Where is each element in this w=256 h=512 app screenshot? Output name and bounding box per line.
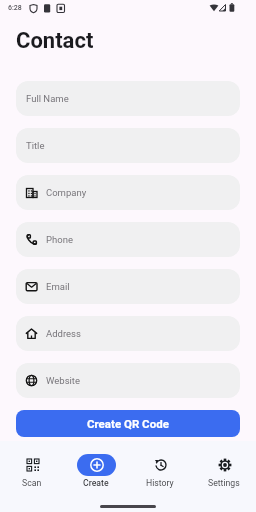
staticText: Settings xyxy=(208,478,240,488)
staticText: History xyxy=(146,478,174,488)
button[interactable]: Title xyxy=(16,128,240,163)
button[interactable]: Create xyxy=(64,454,128,500)
staticText: Website xyxy=(46,375,81,386)
button[interactable]: Address xyxy=(16,316,240,351)
staticText: Create QR Code xyxy=(87,417,169,430)
staticText: Full Name xyxy=(26,93,69,104)
staticText: Title xyxy=(26,140,45,151)
staticText: Scan xyxy=(22,478,42,488)
staticText: Address xyxy=(46,328,81,339)
button[interactable]: Settings xyxy=(192,454,256,500)
staticText: 6:28 xyxy=(8,4,22,12)
button[interactable]: Scan xyxy=(0,454,64,500)
button[interactable]: Email xyxy=(16,269,240,304)
staticText: Email xyxy=(46,281,70,292)
button[interactable]: Create QR Code xyxy=(16,410,240,437)
button[interactable]: Company xyxy=(16,175,240,210)
button[interactable]: Phone xyxy=(16,222,240,257)
staticText: Contact xyxy=(16,28,94,54)
staticText: Create xyxy=(83,478,109,488)
staticText: Phone xyxy=(46,234,73,245)
staticText: Company xyxy=(46,187,87,198)
button[interactable]: Website xyxy=(16,363,240,398)
button[interactable]: Full Name xyxy=(16,81,240,116)
button[interactable]: History xyxy=(128,454,192,500)
